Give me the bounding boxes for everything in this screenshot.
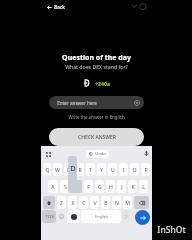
button[interactable]: T	[86, 163, 95, 176]
staticText: I	[123, 166, 125, 173]
button[interactable]: I	[119, 163, 128, 176]
button[interactable]: Q	[43, 163, 51, 176]
staticText: Question of the day	[62, 53, 131, 63]
staticText: S	[64, 183, 67, 190]
staticText: Back	[54, 4, 65, 10]
staticText: CHECK ANSWER	[78, 134, 116, 141]
staticText: U	[111, 166, 115, 173]
button[interactable]: Backspace	[134, 196, 149, 209]
button[interactable]: E	[64, 163, 73, 176]
button[interactable]: Stickers	[67, 210, 80, 223]
button[interactable]: Emoji	[57, 210, 66, 223]
staticText: T	[89, 166, 92, 173]
button[interactable]: L	[139, 180, 148, 193]
staticText: Z	[60, 199, 63, 206]
button[interactable]: Back	[45, 2, 67, 12]
staticText: X	[71, 199, 75, 206]
button[interactable]: U	[108, 163, 117, 176]
staticText: InShOt	[157, 224, 186, 236]
staticText: M	[125, 199, 130, 206]
button[interactable]: F	[84, 180, 93, 193]
staticText: B	[104, 199, 108, 206]
button[interactable]: Voice input	[141, 148, 151, 158]
staticText: C	[82, 199, 86, 206]
staticText: O	[132, 166, 137, 173]
button[interactable]: J	[117, 180, 126, 193]
button[interactable]: Enter	[135, 210, 150, 225]
staticText: Undo	[95, 151, 106, 157]
staticText: Enter answer here	[57, 100, 97, 106]
button[interactable]: R	[75, 163, 84, 176]
button[interactable]: N	[112, 196, 121, 209]
button[interactable]: X	[68, 196, 77, 209]
button[interactable]: C	[79, 196, 88, 209]
staticText: P	[144, 166, 148, 173]
button[interactable]: A	[48, 180, 58, 193]
button[interactable]: Clipboard	[43, 149, 53, 159]
staticText: E	[67, 166, 70, 173]
staticText: Write the answer in English	[68, 114, 125, 120]
button[interactable]: Shift	[43, 196, 55, 209]
staticText: R	[78, 166, 82, 173]
button[interactable]: Undo	[86, 150, 109, 158]
staticText: What does DEX stand for?	[65, 63, 128, 70]
button[interactable]: ?123	[42, 210, 56, 223]
staticText: D	[70, 163, 76, 173]
staticText: ?123	[45, 214, 54, 219]
button[interactable]: English	[81, 210, 121, 223]
staticText: W	[55, 166, 60, 173]
staticText: G	[98, 183, 102, 190]
button[interactable]: K	[128, 180, 137, 193]
staticText: J	[121, 183, 123, 190]
button[interactable]: B	[101, 196, 110, 209]
button[interactable]	[72, 180, 82, 193]
staticText: A	[51, 183, 55, 190]
button[interactable]: G	[95, 180, 104, 193]
staticText: V	[93, 199, 97, 206]
button[interactable]: M	[123, 196, 132, 209]
button[interactable]: Y	[97, 163, 106, 176]
staticText: L	[142, 183, 145, 190]
button[interactable]: H	[106, 180, 115, 193]
button[interactable]: V	[90, 196, 99, 209]
staticText: F	[87, 183, 90, 190]
button[interactable]: Z	[57, 196, 66, 209]
button[interactable]: CHECK ANSWER	[49, 128, 144, 146]
button[interactable]: O	[130, 163, 139, 176]
staticText: H	[109, 183, 113, 190]
staticText: Q	[45, 166, 50, 173]
button[interactable]: S	[60, 180, 70, 193]
staticText: N	[115, 199, 119, 206]
button[interactable]: GIF	[122, 210, 130, 223]
staticText: Y	[100, 166, 103, 173]
button[interactable]: P	[141, 163, 150, 176]
staticText: +240a	[95, 80, 110, 87]
button[interactable]: W	[53, 163, 62, 176]
staticText: English	[95, 214, 108, 219]
other: Status	[130, 2, 150, 10]
button[interactable]: Enter answer here	[49, 96, 144, 109]
staticText: K	[131, 183, 135, 190]
